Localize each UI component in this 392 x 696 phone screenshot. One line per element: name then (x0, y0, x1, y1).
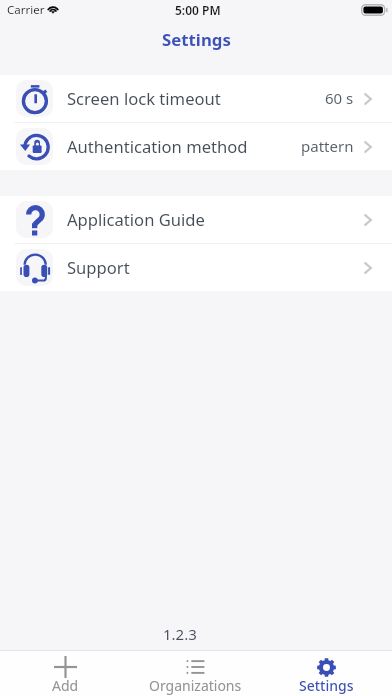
button[interactable]: Screen lock timeout (0, 75, 392, 122)
button[interactable]: Settings (261, 651, 392, 696)
staticText: Carrier (7, 2, 45, 18)
staticText: 60 s (325, 88, 354, 108)
button[interactable]: Application Guide (0, 196, 392, 243)
staticText: Settings (162, 28, 231, 51)
button[interactable]: Organizations (130, 651, 261, 696)
button[interactable]: Support (0, 244, 392, 291)
staticText: Organizations (149, 676, 242, 695)
button[interactable]: Add (0, 651, 130, 696)
staticText: Settings (299, 676, 354, 695)
staticText: Screen lock timeout (67, 87, 221, 110)
staticText: Add (52, 676, 79, 695)
staticText: 1.2.3 (163, 624, 197, 644)
staticText: Support (67, 256, 130, 279)
staticText: Authentication method (67, 135, 248, 158)
staticText: 5:00 PM (175, 2, 221, 18)
button[interactable]: Authentication method (0, 123, 392, 170)
staticText: pattern (301, 136, 354, 156)
staticText: Application Guide (67, 208, 205, 231)
